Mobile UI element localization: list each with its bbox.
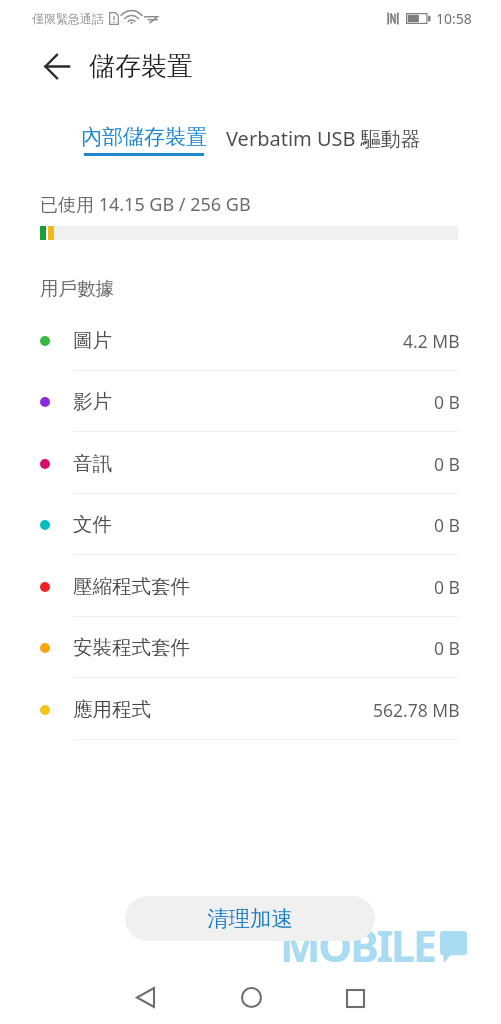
button[interactable]: Recents (333, 976, 377, 1020)
button[interactable]: 清理加速 (125, 896, 375, 941)
button[interactable]: Verbatim USB 驅動器 (218, 112, 426, 160)
staticText: 用戶數據 (40, 277, 114, 300)
button[interactable]: 應用程式 (0, 679, 501, 740)
staticText: 影片 (73, 389, 112, 414)
staticText: 僅限緊急通話 (32, 11, 104, 26)
staticText: 儲存裝置 (89, 50, 193, 83)
staticText: 已使用 14.15 GB / 256 GB (40, 192, 251, 216)
button[interactable]: 文件 (0, 494, 501, 555)
staticText: 安裝程式套件 (73, 635, 190, 660)
staticText: 0 B (434, 636, 460, 660)
staticText: 音訊 (73, 451, 112, 476)
staticText: 562.78 MB (373, 698, 460, 722)
staticText: 內部儲存裝置 (81, 124, 207, 150)
staticText: 壓縮程式套件 (73, 574, 190, 599)
staticText: 文件 (73, 512, 112, 537)
staticText: 0 B (434, 390, 460, 414)
button[interactable]: 壓縮程式套件 (0, 556, 501, 617)
staticText: Verbatim USB 驅動器 (226, 125, 421, 152)
staticText: MOBILE (280, 916, 435, 975)
staticText: 清理加速 (207, 905, 293, 932)
staticText: 10:58 (436, 9, 472, 28)
button[interactable]: 內部儲存裝置 (74, 112, 212, 160)
staticText: 應用程式 (73, 697, 151, 722)
staticText: 0 B (434, 513, 460, 537)
button[interactable]: 安裝程式套件 (0, 617, 501, 678)
staticText: 4.2 MB (403, 329, 460, 353)
button[interactable]: Back (43, 50, 76, 83)
staticText: 0 B (434, 452, 460, 476)
button[interactable]: Home (229, 975, 273, 1019)
button[interactable]: 影片 (0, 371, 501, 432)
staticText: 0 B (434, 575, 460, 599)
button[interactable]: Back (123, 975, 167, 1019)
staticText: 圖片 (73, 328, 112, 353)
button[interactable]: 圖片 (0, 310, 501, 371)
button[interactable]: 音訊 (0, 433, 501, 494)
